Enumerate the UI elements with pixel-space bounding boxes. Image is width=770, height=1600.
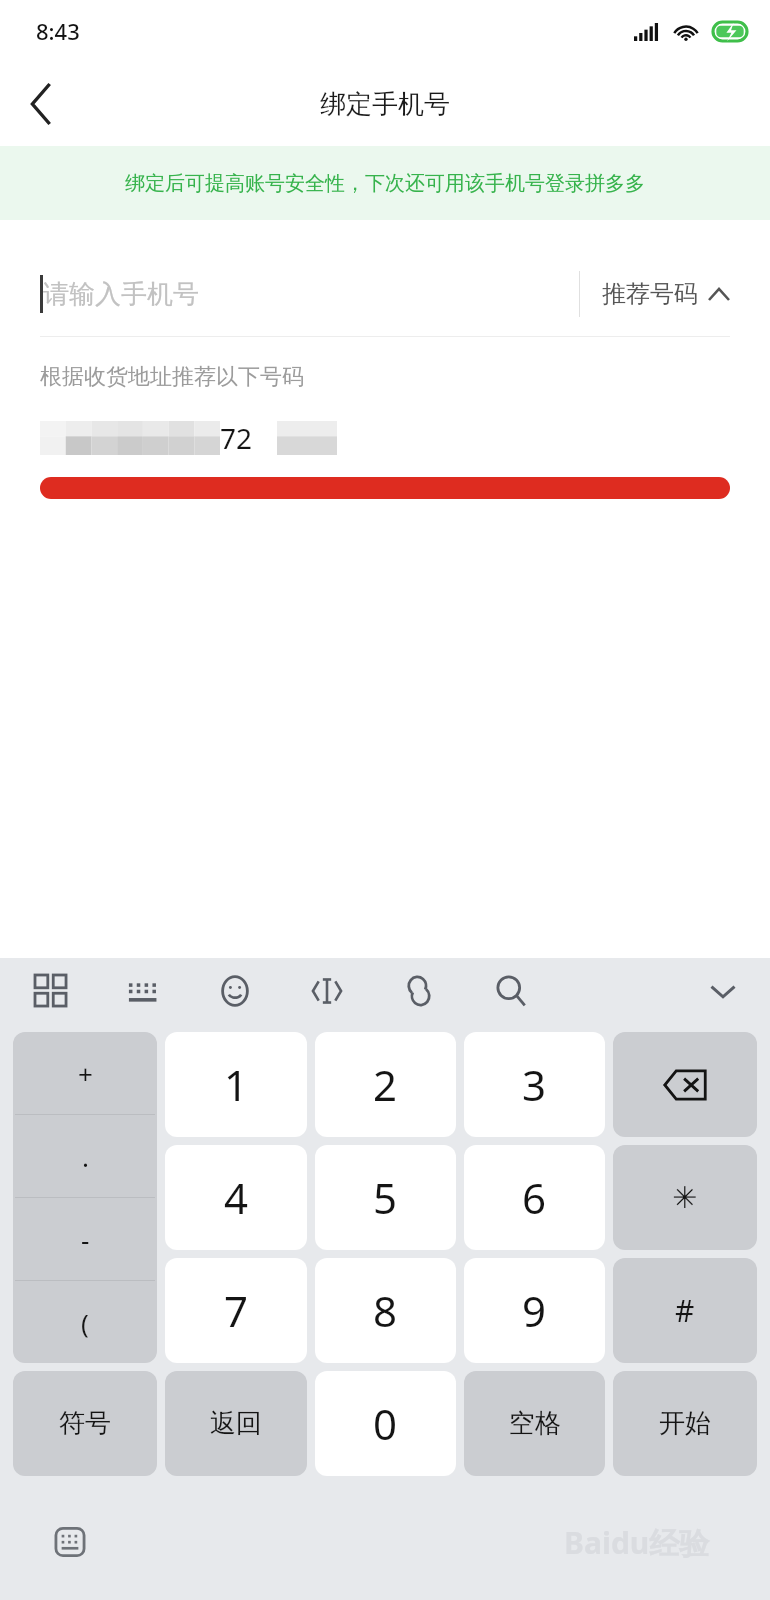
staticText: ✳ bbox=[672, 1180, 698, 1215]
staticText: 1 bbox=[224, 1056, 249, 1113]
staticText: 绑定手机号 bbox=[320, 88, 450, 121]
staticText: 3 bbox=[522, 1056, 547, 1113]
button[interactable]: Back bbox=[0, 62, 84, 146]
button[interactable]: + bbox=[13, 1032, 157, 1114]
staticText: # bbox=[675, 1290, 695, 1331]
staticText: 开始 bbox=[659, 1407, 711, 1440]
button[interactable]: 推荐号码 bbox=[580, 279, 730, 309]
button[interactable] bbox=[40, 477, 730, 499]
staticText: 5 bbox=[373, 1169, 398, 1226]
button[interactable]: 7 bbox=[165, 1258, 307, 1363]
button[interactable]: 4 bbox=[165, 1145, 307, 1250]
staticText: 6 bbox=[522, 1169, 547, 1226]
button[interactable]: 3 bbox=[464, 1032, 605, 1137]
staticText: 符号 bbox=[59, 1407, 111, 1440]
button[interactable]: 2 bbox=[315, 1032, 456, 1137]
button[interactable]: Hide keyboard bbox=[698, 966, 748, 1016]
staticText: . bbox=[82, 1139, 89, 1174]
button[interactable]: 1 bbox=[165, 1032, 307, 1137]
button[interactable]: . bbox=[13, 1115, 157, 1197]
button[interactable]: # bbox=[613, 1258, 757, 1363]
staticText: 7 bbox=[224, 1282, 249, 1339]
staticText: 根据收货地址推荐以下号码 bbox=[40, 363, 304, 391]
staticText: 2 bbox=[373, 1056, 398, 1113]
button[interactable]: 空格 bbox=[464, 1371, 605, 1476]
staticText: 9 bbox=[522, 1282, 547, 1339]
button[interactable]: 9 bbox=[464, 1258, 605, 1363]
button[interactable]: 符号 bbox=[13, 1371, 157, 1476]
button[interactable]: ✳ bbox=[613, 1145, 757, 1250]
staticText: 返回 bbox=[210, 1407, 262, 1440]
button[interactable]: Backspace bbox=[613, 1032, 757, 1137]
button[interactable]: 0 bbox=[315, 1371, 456, 1476]
button[interactable]: Cursor control bbox=[302, 966, 352, 1016]
staticText: 0 bbox=[373, 1395, 398, 1452]
button[interactable]: - bbox=[13, 1198, 157, 1280]
button[interactable]: Search bbox=[486, 966, 536, 1016]
button[interactable]: Apps bbox=[26, 966, 76, 1016]
button[interactable]: 6 bbox=[464, 1145, 605, 1250]
staticText: + bbox=[78, 1056, 93, 1091]
button[interactable]: Clipboard bbox=[394, 966, 444, 1016]
staticText: 空格 bbox=[509, 1407, 561, 1440]
staticText: 72 bbox=[220, 419, 253, 457]
staticText: 8 bbox=[373, 1282, 398, 1339]
button[interactable]: 开始 bbox=[613, 1371, 757, 1476]
staticText: 4 bbox=[224, 1169, 249, 1226]
staticText: 推荐号码 bbox=[602, 279, 698, 309]
button[interactable]: Keyboard layout bbox=[118, 966, 168, 1016]
staticText: ( bbox=[81, 1305, 89, 1340]
button[interactable]: ( bbox=[13, 1281, 157, 1363]
button[interactable]: Switch input method bbox=[44, 1516, 96, 1568]
button[interactable]: 5 bbox=[315, 1145, 456, 1250]
button[interactable]: 8 bbox=[315, 1258, 456, 1363]
staticText: 请输入手机号 bbox=[43, 278, 199, 311]
staticText: 绑定后可提高账号安全性，下次还可用该手机号登录拼多多 bbox=[125, 171, 645, 196]
staticText: 8:43 bbox=[36, 16, 80, 46]
staticText: - bbox=[81, 1222, 90, 1257]
staticText: Baidu经验 bbox=[564, 1522, 710, 1563]
button[interactable]: Emoji bbox=[210, 966, 260, 1016]
button[interactable]: 返回 bbox=[165, 1371, 307, 1476]
